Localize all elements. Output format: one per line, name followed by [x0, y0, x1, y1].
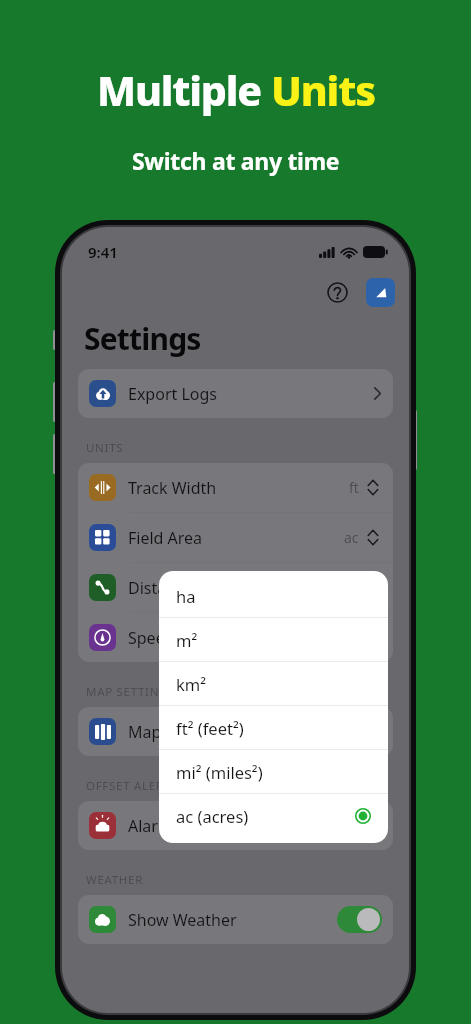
staticText: ft: [349, 478, 359, 497]
staticText: m²: [176, 629, 198, 651]
button[interactable]: ha: [159, 574, 388, 617]
staticText: Multiple: [97, 62, 271, 118]
staticText: ft² (feet²): [176, 717, 244, 739]
staticText: UNITS: [86, 440, 124, 456]
staticText: Show Weather: [128, 909, 237, 931]
button[interactable]: Show Weather: [78, 895, 393, 944]
staticText: km²: [176, 673, 207, 695]
staticText: Units: [271, 62, 375, 118]
staticText: Switch at any time: [132, 145, 340, 176]
staticText: Speed: [128, 627, 175, 649]
button[interactable]: Distance: [78, 563, 393, 612]
staticText: 9:41: [88, 242, 118, 262]
button[interactable]: Map Type: [78, 707, 393, 756]
staticText: Map Type: [128, 721, 202, 743]
button[interactable]: Speed: [78, 613, 393, 662]
button[interactable]: Export Logs: [78, 369, 393, 418]
button[interactable]: [337, 812, 382, 839]
button[interactable]: ac (acres): [159, 794, 388, 837]
button[interactable]: mi² (miles²): [159, 750, 388, 793]
button[interactable]: Edit: [366, 278, 395, 307]
button[interactable]: Help: [322, 277, 352, 307]
staticText: Settings: [84, 318, 201, 359]
staticText: mi² (miles²): [176, 761, 263, 783]
button[interactable]: m²: [159, 618, 388, 661]
staticText: MAP SETTINGS: [86, 684, 176, 700]
button[interactable]: ft² (feet²): [159, 706, 388, 749]
button[interactable]: Field Area: [78, 513, 393, 562]
staticText: WEATHER: [86, 872, 143, 888]
staticText: ac (acres): [176, 805, 249, 827]
button[interactable]: km²: [159, 662, 388, 705]
button[interactable]: [337, 906, 382, 933]
staticText: ac: [344, 528, 359, 547]
staticText: Alarm Sound: [128, 815, 226, 837]
button[interactable]: Alarm Sound: [78, 801, 393, 850]
staticText: Export Logs: [128, 383, 217, 405]
button[interactable]: Track Width: [78, 463, 393, 512]
staticText: Field Area: [128, 527, 203, 549]
staticText: Track Width: [128, 477, 217, 499]
staticText: OFFSET ALERT: [86, 778, 171, 794]
staticText: ha: [176, 585, 196, 607]
staticText: Distance: [128, 577, 193, 599]
